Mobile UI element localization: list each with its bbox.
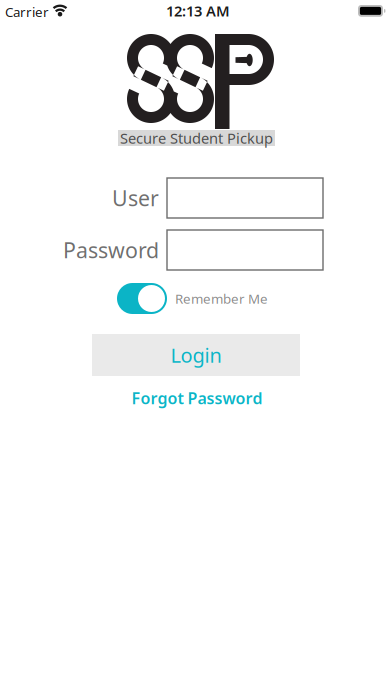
button[interactable]: Forgot Password [117, 385, 277, 411]
staticText: 12:13 AM [166, 1, 230, 20]
button[interactable]: Remember Me [117, 283, 268, 314]
staticText: Secure Student Pickup [120, 128, 273, 148]
staticText: User [112, 184, 159, 212]
staticText: Remember Me [175, 290, 268, 307]
staticText: Login [170, 342, 221, 368]
staticText: Carrier [5, 3, 49, 21]
staticText: Forgot Password [131, 387, 262, 409]
button[interactable]: Login [92, 334, 300, 376]
staticText: Password [63, 236, 159, 264]
